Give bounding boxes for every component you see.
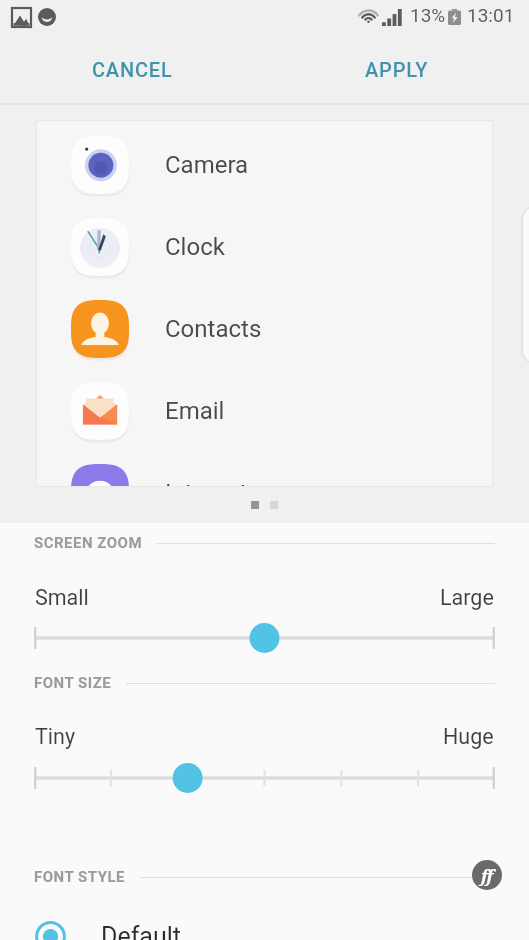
staticText: Internet [165,479,248,487]
staticText: Small [35,585,89,610]
button[interactable]: Default [0,910,529,940]
staticText: APPLY [365,58,429,81]
staticText: FONT SIZE [34,674,112,692]
staticText: FONT STYLE [34,868,126,886]
staticText: SCREEN ZOOM [34,534,143,552]
staticText: Default [101,922,181,940]
button[interactable]: APPLY [264,36,529,103]
button[interactable]: Internet [36,452,493,487]
staticText: Tiny [35,724,76,749]
other: Smart Manager notification [38,8,56,26]
other: Screenshot notification [12,8,31,27]
staticText: Contacts [165,315,262,343]
button[interactable]: Download fonts [472,860,502,890]
staticText: Camera [165,151,249,179]
button[interactable]: Clock [36,206,493,288]
staticText: 13% [410,4,446,26]
button[interactable]: Contacts [36,288,493,370]
button[interactable]: CANCEL [0,36,264,103]
staticText: Clock [165,233,225,261]
button[interactable]: Camera [36,124,493,206]
staticText: Huge [443,724,494,749]
button[interactable]: Email [36,370,493,452]
button[interactable] [0,761,529,795]
staticText: 13:01 [467,4,515,26]
staticText: CANCEL [92,58,173,81]
button[interactable]: Camera [36,120,493,487]
staticText: Large [440,585,494,610]
staticText: ff [481,864,494,887]
button[interactable] [0,621,529,655]
staticText: Email [165,397,225,425]
